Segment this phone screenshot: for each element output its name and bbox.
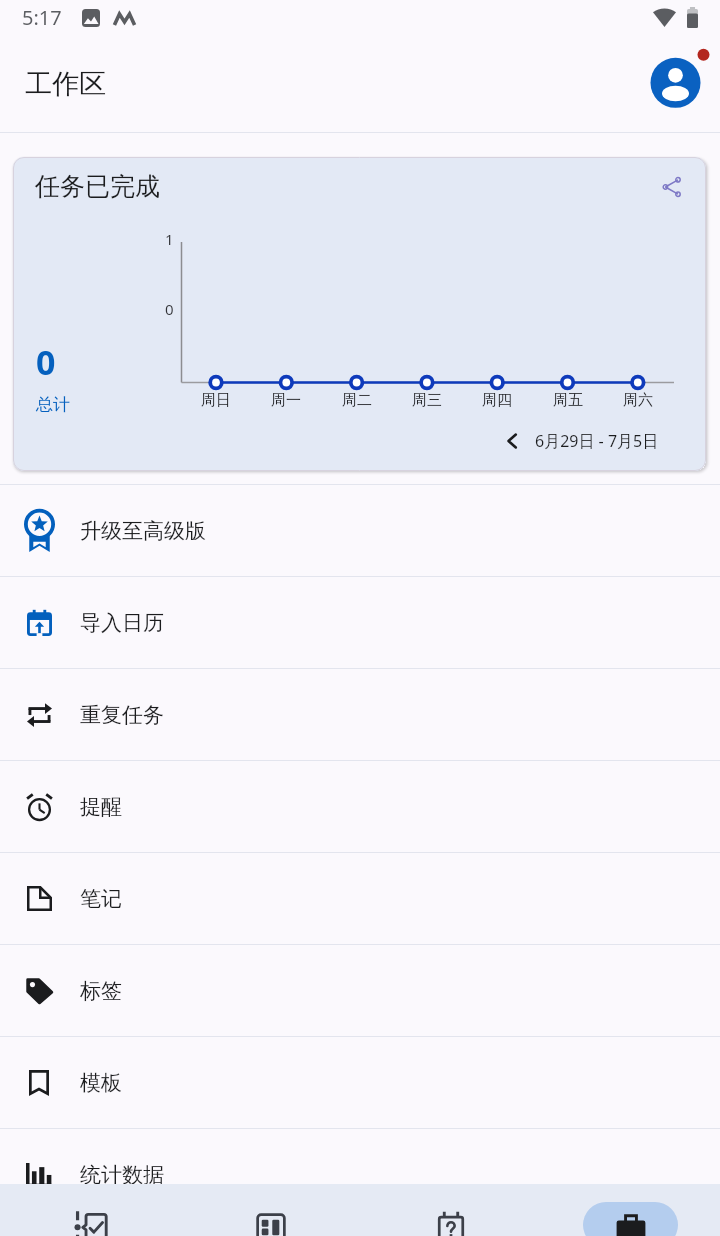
staticText: 导入日历 [80, 610, 164, 636]
button[interactable]: 提醒 [0, 761, 720, 852]
staticText: 周四 [472, 391, 522, 410]
staticText: 重复任务 [80, 702, 164, 728]
staticText: 统计数据 [80, 1162, 164, 1188]
button[interactable]: 导入日历 [0, 577, 720, 668]
staticText: 周六 [613, 391, 663, 410]
staticText: 笔记 [80, 886, 122, 912]
button[interactable]: Account [647, 51, 707, 111]
button[interactable]: 升级至高级版 [0, 485, 720, 576]
button[interactable]: 笔记 [0, 853, 720, 944]
staticText: 周日 [191, 391, 241, 410]
staticText: 升级至高级版 [80, 518, 206, 544]
button[interactable]: Board [180, 1184, 360, 1236]
staticText: 周二 [332, 391, 382, 410]
button[interactable]: Planner [360, 1184, 540, 1236]
staticText: 提醒 [80, 794, 122, 820]
staticText: 0 [36, 339, 56, 385]
button[interactable]: Share [648, 163, 696, 211]
staticText: 模板 [80, 1070, 122, 1096]
button[interactable]: 重复任务 [0, 669, 720, 760]
staticText: 0 [165, 299, 174, 319]
button[interactable]: Tasks [0, 1184, 180, 1236]
button[interactable]: 模板 [0, 1037, 720, 1128]
staticText: 工作区 [25, 67, 106, 101]
staticText: 周一 [261, 391, 311, 410]
staticText: 周三 [402, 391, 452, 410]
button[interactable]: Workspace [540, 1184, 720, 1236]
staticText: 1 [165, 229, 174, 249]
staticText: 任务已完成 [35, 171, 160, 202]
staticText: 周五 [543, 391, 593, 410]
button[interactable]: 标签 [0, 945, 720, 1036]
staticText: 标签 [80, 978, 122, 1004]
button[interactable]: 6月29日 - 7月5日 [504, 430, 659, 452]
staticText: 5:17 [22, 4, 62, 31]
staticText: 总计 [36, 394, 70, 415]
staticText: 6月29日 - 7月5日 [535, 430, 659, 452]
button[interactable]: 统计数据 [0, 1129, 720, 1220]
